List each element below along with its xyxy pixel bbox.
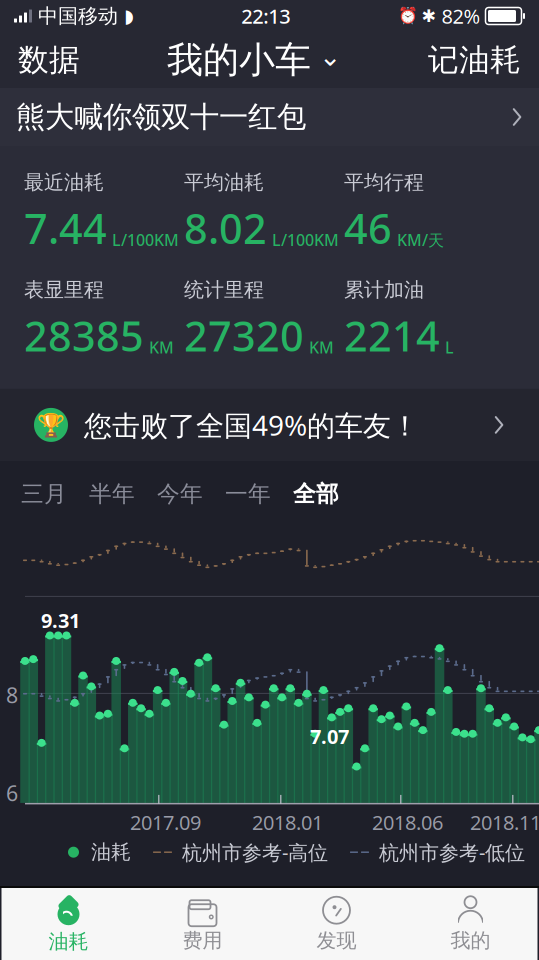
- staticText: ⌄: [319, 41, 341, 72]
- staticText: 7.07: [310, 723, 349, 749]
- staticText: 半年: [89, 480, 135, 508]
- button[interactable]: 数据: [0, 32, 98, 88]
- staticText: 今年: [157, 480, 203, 508]
- staticText: ◗: [124, 5, 134, 27]
- staticText: 全部: [293, 480, 339, 508]
- staticText: 8: [6, 681, 18, 709]
- button[interactable]: 发现: [269, 889, 403, 959]
- staticText: 一年: [225, 480, 271, 508]
- staticText: ✱: [421, 6, 436, 26]
- staticText: 2018.11: [470, 809, 539, 835]
- staticText: 平均油耗: [184, 170, 264, 195]
- staticText: 2214: [344, 308, 440, 363]
- staticText: KM: [149, 337, 174, 358]
- button[interactable]: 我的: [403, 889, 537, 959]
- button[interactable]: 熊大喊你领双十一红包: [0, 88, 539, 146]
- staticText: 中国移动: [38, 4, 118, 28]
- staticText: 82%: [441, 3, 480, 29]
- staticText: 平均行程: [344, 170, 424, 195]
- staticText: 2017.09: [130, 809, 201, 835]
- staticText: 三月: [21, 480, 67, 508]
- staticText: 46: [344, 201, 392, 255]
- button[interactable]: 🏆: [0, 389, 539, 461]
- staticText: 9.31: [41, 607, 80, 633]
- staticText: 28385: [24, 308, 144, 363]
- staticText: 熊大喊你领双十一红包: [16, 99, 306, 135]
- staticText: 7.44: [24, 201, 107, 255]
- staticText: 记油耗: [428, 41, 521, 79]
- staticText: ⏰: [397, 7, 417, 25]
- staticText: 油耗: [91, 840, 131, 864]
- staticText: 2018.06: [372, 809, 443, 835]
- staticText: 表显里程: [24, 277, 104, 302]
- button[interactable]: 费用: [135, 889, 269, 959]
- staticText: 发现: [316, 928, 356, 953]
- staticText: 油耗: [48, 929, 88, 954]
- staticText: 杭州市参考-高位: [182, 839, 328, 865]
- staticText: 我的: [450, 928, 490, 953]
- button[interactable]: 一年: [214, 474, 282, 514]
- staticText: 数据: [18, 41, 80, 79]
- staticText: 我的小车: [167, 38, 311, 82]
- staticText: 杭州市参考-低位: [379, 839, 525, 865]
- staticText: L/100KM: [272, 229, 339, 250]
- button[interactable]: 今年: [146, 474, 214, 514]
- staticText: 22:13: [241, 3, 290, 29]
- staticText: 6: [6, 779, 18, 807]
- staticText: 统计里程: [184, 277, 264, 302]
- staticText: KM: [309, 337, 334, 358]
- staticText: KM/天: [397, 229, 444, 250]
- button[interactable]: 半年: [78, 474, 146, 514]
- button[interactable]: 记油耗: [410, 32, 539, 88]
- staticText: 🏆: [37, 412, 65, 438]
- staticText: 您击败了全国49%的车友！: [84, 406, 419, 443]
- button[interactable]: 油耗: [1, 889, 135, 959]
- staticText: 累计加油: [344, 277, 424, 302]
- staticText: 费用: [182, 928, 222, 953]
- button[interactable]: 全部: [282, 474, 350, 514]
- button[interactable]: 我的小车: [167, 32, 341, 88]
- staticText: 27320: [184, 308, 304, 363]
- button[interactable]: 三月: [10, 474, 78, 514]
- staticText: 2018.01: [252, 809, 323, 835]
- staticText: 8.02: [184, 201, 267, 255]
- staticText: 最近油耗: [24, 170, 104, 195]
- staticText: L/100KM: [112, 229, 179, 250]
- staticText: L: [445, 337, 454, 358]
